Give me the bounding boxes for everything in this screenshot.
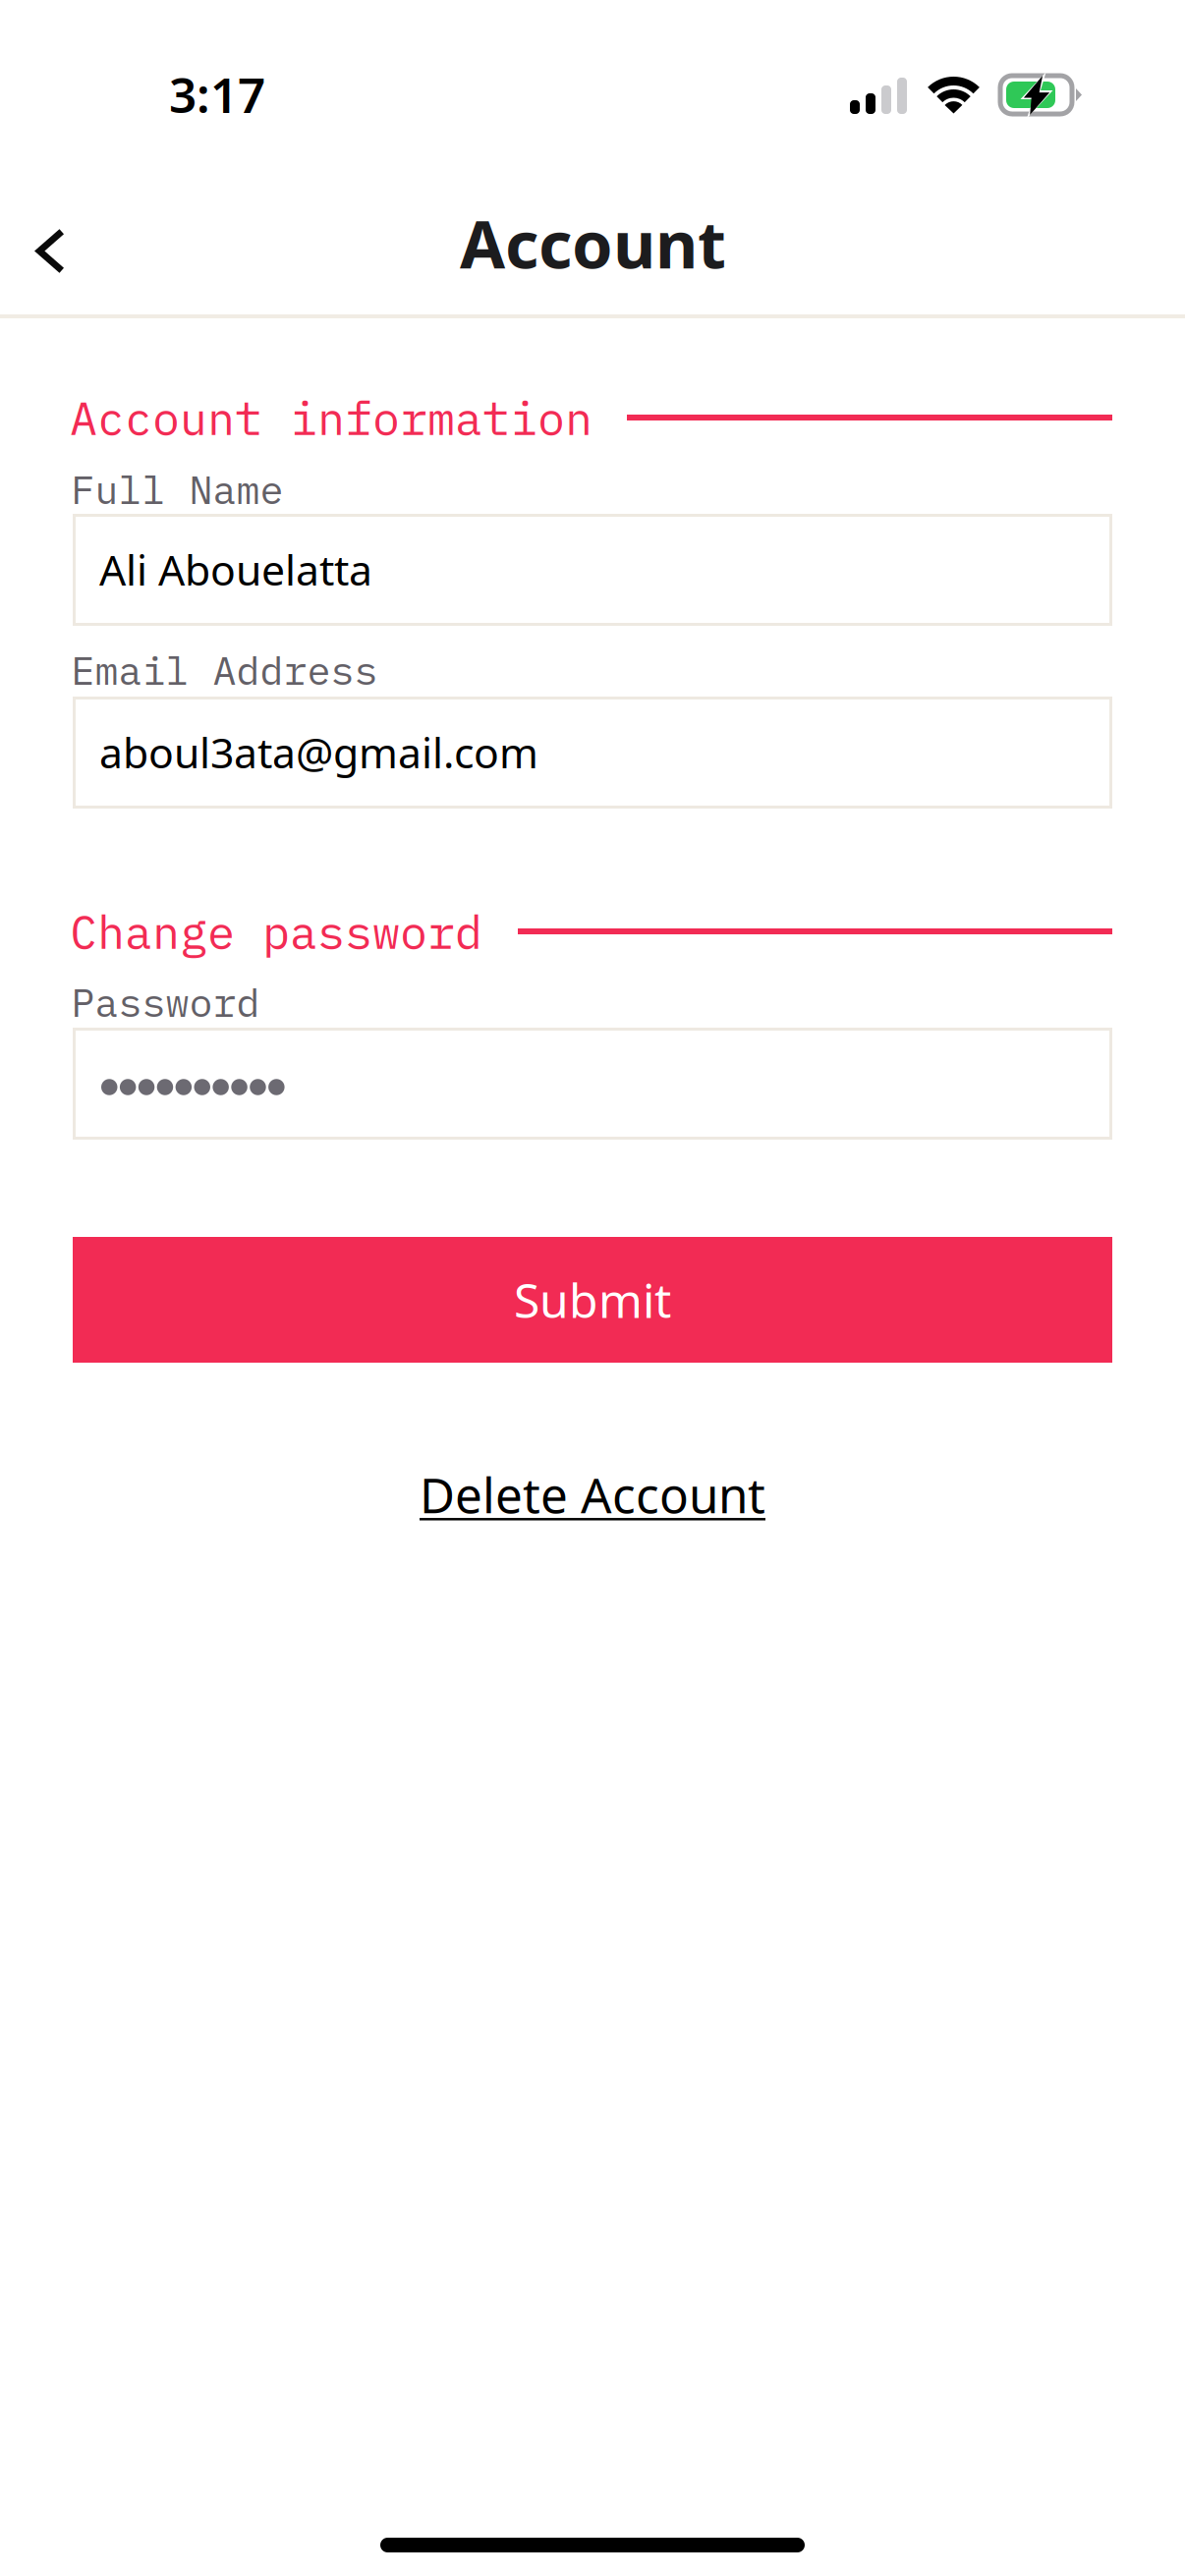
staticText: 3:17 xyxy=(169,62,265,126)
staticText: Ali Abouelatta xyxy=(99,541,372,597)
staticText: Account information xyxy=(70,388,592,448)
staticText: Submit xyxy=(514,1268,671,1331)
staticText: Change password xyxy=(70,902,482,962)
staticText: Account xyxy=(460,199,726,286)
button[interactable]: Delete Account xyxy=(396,1455,789,1534)
staticText: Full Name xyxy=(71,464,283,515)
staticText: Delete Account xyxy=(420,1462,765,1526)
button[interactable]: Back xyxy=(0,184,114,298)
button[interactable]: Submit xyxy=(73,1237,1112,1363)
staticText: Email Address xyxy=(71,644,378,696)
staticText: aboul3ata@gmail.com xyxy=(99,724,538,780)
staticText: Password xyxy=(71,977,260,1028)
